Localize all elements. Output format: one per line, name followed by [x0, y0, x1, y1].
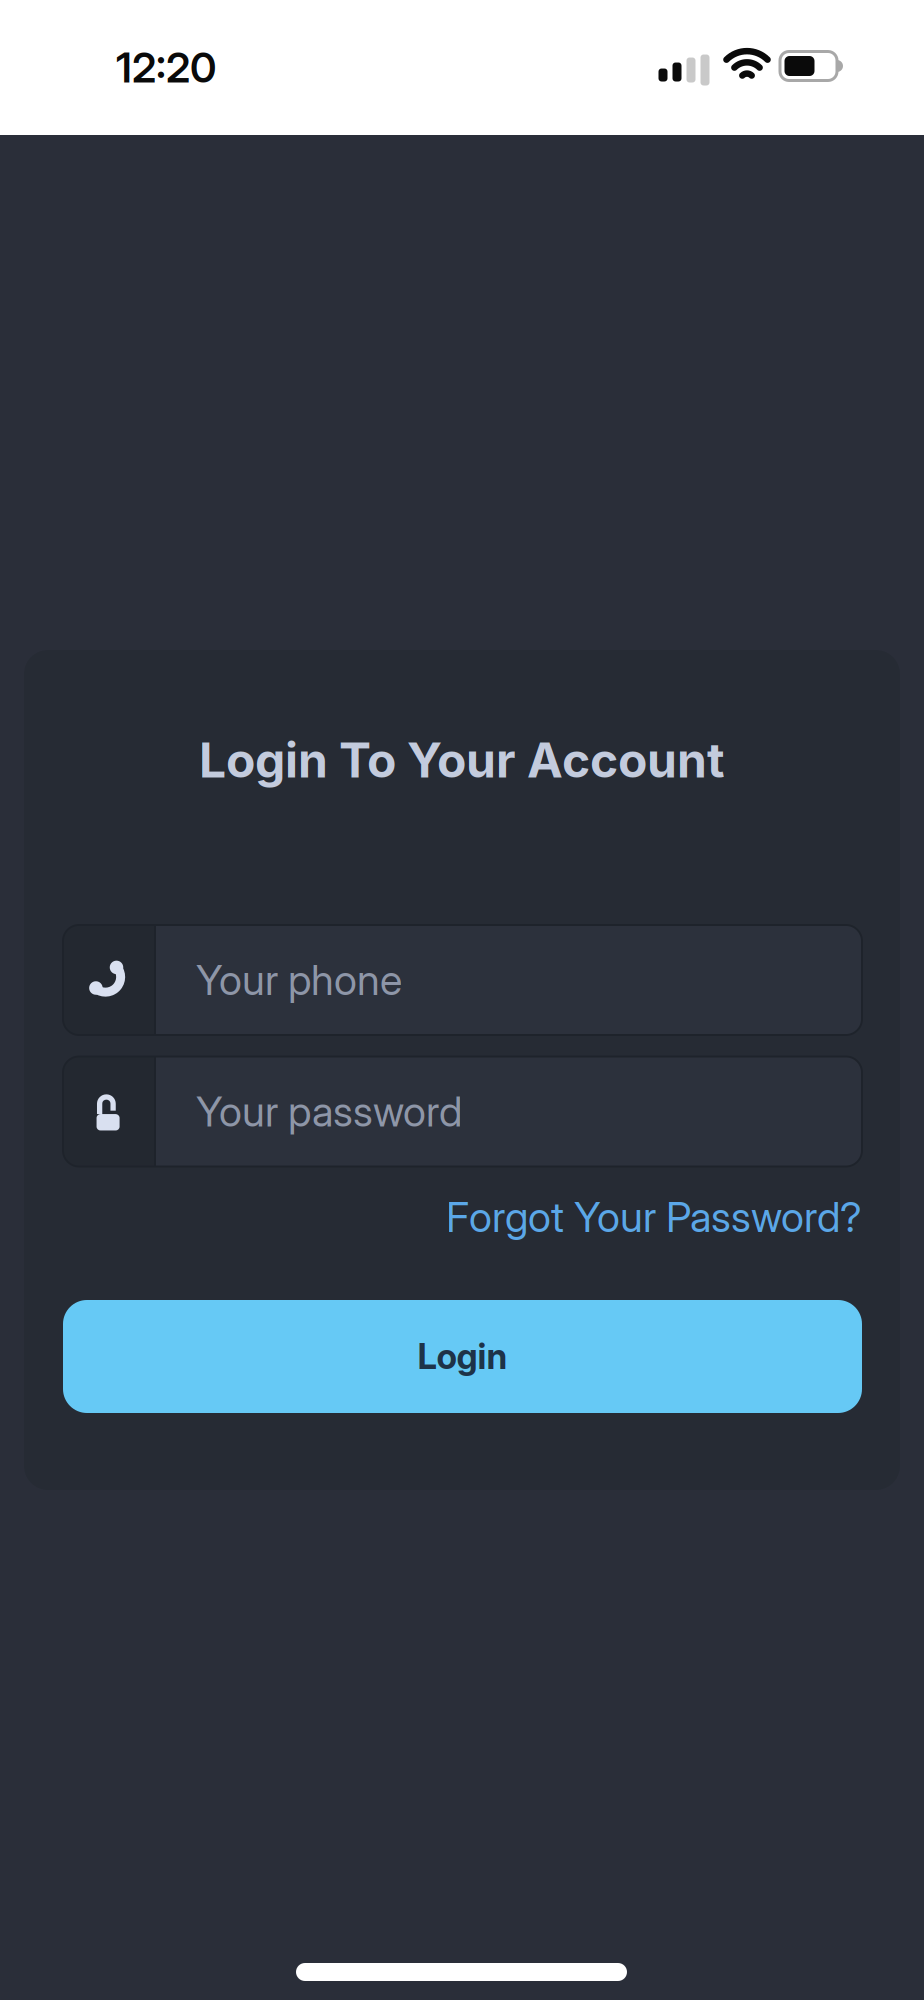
button[interactable]: Your password [63, 1056, 862, 1166]
button[interactable]: Forgot Your Password? [446, 1193, 862, 1241]
staticText: Your password [196, 1087, 462, 1136]
staticText: Your phone [196, 956, 402, 1004]
staticText: 12:20 [116, 43, 216, 92]
staticText: Login [417, 1336, 507, 1377]
button[interactable]: Login [63, 1300, 862, 1413]
button[interactable]: Your phone [63, 925, 862, 1035]
staticText: Forgot Your Password? [446, 1193, 862, 1241]
staticText: Login To Your Account [199, 732, 725, 788]
